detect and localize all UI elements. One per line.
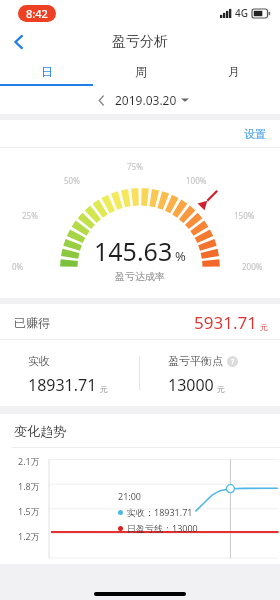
staticText: 盈亏平衡点: [168, 354, 223, 368]
staticText: 50%: [64, 175, 80, 186]
staticText: 8:42: [26, 6, 48, 21]
staticText: 日: [41, 64, 53, 79]
button[interactable]: 设置: [240, 124, 270, 144]
staticText: 1.5万: [18, 505, 40, 517]
staticText: 已赚得: [14, 315, 50, 330]
staticText: 75%: [127, 161, 143, 172]
button[interactable]: 月: [187, 58, 280, 84]
staticText: 150%: [234, 210, 255, 221]
button[interactable]: 盈亏平衡点: [140, 340, 280, 406]
staticText: 13000: [168, 374, 214, 396]
staticText: 变化趋势: [14, 423, 66, 439]
staticText: 0%: [12, 261, 24, 272]
staticText: 月: [228, 64, 240, 79]
staticText: 100%: [186, 175, 207, 186]
staticText: 5931.71: [194, 311, 257, 334]
button[interactable]: 实收: [0, 340, 139, 406]
button[interactable]: Back: [0, 26, 38, 58]
staticText: 盈亏分析: [112, 33, 168, 51]
staticText: 200%: [242, 261, 263, 272]
staticText: 18931.71: [28, 374, 97, 396]
staticText: 实收: [28, 354, 50, 368]
staticText: 2019.03.20: [115, 92, 177, 108]
staticText: %: [175, 247, 186, 265]
staticText: 实收：18931.71: [127, 506, 193, 518]
staticText: 4G: [235, 6, 248, 20]
staticText: 元: [100, 384, 108, 394]
staticText: 1.8万: [18, 480, 40, 492]
staticText: 日盈亏线：13000: [127, 522, 198, 534]
button[interactable]: 日: [0, 58, 94, 84]
staticText: 元: [217, 384, 225, 394]
staticText: 1.2万: [18, 530, 40, 542]
staticText: 21:00: [118, 490, 142, 502]
staticText: 元: [260, 322, 268, 332]
staticText: 25%: [22, 210, 38, 221]
staticText: 周: [135, 64, 147, 79]
staticText: ?: [231, 357, 235, 367]
button[interactable]: 周: [94, 58, 187, 84]
staticText: 145.63: [94, 234, 173, 268]
staticText: 2.1万: [18, 455, 40, 467]
button[interactable]: Previous day: [91, 90, 111, 110]
staticText: 盈亏达成率: [115, 270, 165, 283]
staticText: 设置: [244, 127, 266, 141]
